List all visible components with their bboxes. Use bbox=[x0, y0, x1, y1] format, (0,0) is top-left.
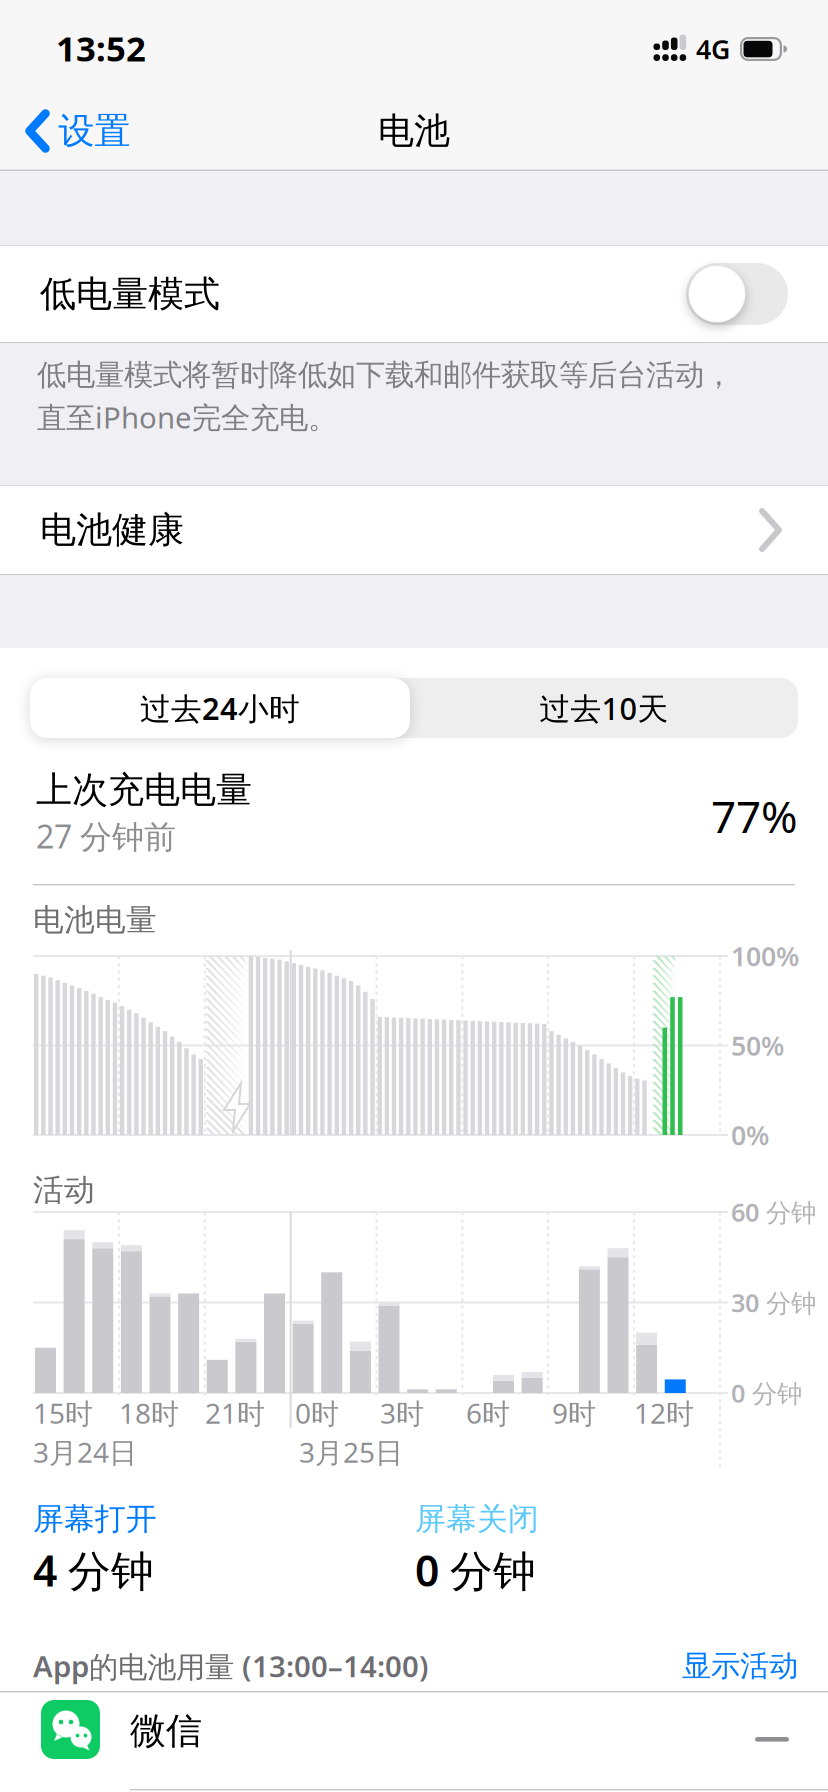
staticText: 电池电量 bbox=[33, 901, 157, 939]
staticText: 77% bbox=[711, 787, 798, 845]
staticText: 0时 bbox=[295, 1394, 339, 1432]
button[interactable]: 微信 bbox=[0, 1692, 828, 1789]
button[interactable]: 显示活动 bbox=[618, 1643, 798, 1689]
staticText: 电池 bbox=[378, 109, 450, 153]
staticText: 低电量模式将暂时降低如下载和邮件获取等后台活动， bbox=[37, 357, 733, 393]
staticText: 电池健康 bbox=[40, 508, 184, 552]
staticText: 15时 bbox=[33, 1394, 93, 1432]
staticText: 6时 bbox=[466, 1394, 510, 1432]
staticText: 4 分钟 bbox=[33, 1542, 154, 1598]
button[interactable]: 过去24小时 bbox=[30, 678, 410, 738]
staticText: 低电量模式 bbox=[40, 272, 220, 316]
staticText: 60 分钟 bbox=[731, 1195, 816, 1229]
button[interactable]: 设置 bbox=[3, 101, 140, 161]
staticText: 50% bbox=[731, 1028, 784, 1063]
staticText: 27 分钟前 bbox=[36, 815, 176, 857]
staticText: 3时 bbox=[380, 1394, 424, 1432]
button[interactable]: 过去10天 bbox=[410, 678, 798, 738]
staticText: App的电池用量 (13:00–14:00) bbox=[33, 1646, 429, 1685]
staticText: 上次充电电量 bbox=[36, 768, 252, 812]
staticText: 设置 bbox=[58, 109, 130, 153]
staticText: 9时 bbox=[552, 1394, 596, 1432]
staticText: 显示活动 bbox=[682, 1648, 798, 1684]
staticText: 3月25日 bbox=[299, 1433, 403, 1471]
staticText: 0 分钟 bbox=[415, 1542, 536, 1598]
staticText: 3月24日 bbox=[33, 1433, 137, 1471]
staticText: 过去24小时 bbox=[140, 688, 300, 728]
staticText: 直至iPhone完全充电。 bbox=[37, 397, 337, 436]
staticText: 13:52 bbox=[56, 25, 146, 71]
staticText: 100% bbox=[731, 938, 799, 974]
staticText: 过去10天 bbox=[539, 688, 668, 728]
staticText: 30 分钟 bbox=[731, 1286, 816, 1319]
staticText: 12时 bbox=[634, 1394, 694, 1432]
staticText: 0% bbox=[731, 1117, 769, 1153]
button[interactable]: 低电量模式 bbox=[0, 246, 828, 342]
staticText: 屏幕关闭 bbox=[415, 1500, 539, 1538]
staticText: 21时 bbox=[205, 1394, 265, 1432]
staticText: 活动 bbox=[33, 1171, 95, 1209]
staticText: 18时 bbox=[119, 1394, 179, 1432]
button[interactable]: 电池健康 bbox=[0, 486, 828, 574]
staticText: 微信 bbox=[130, 1709, 202, 1753]
staticText: 屏幕打开 bbox=[33, 1500, 157, 1538]
staticText: 0 分钟 bbox=[731, 1376, 802, 1410]
staticText: 4G bbox=[696, 31, 730, 67]
